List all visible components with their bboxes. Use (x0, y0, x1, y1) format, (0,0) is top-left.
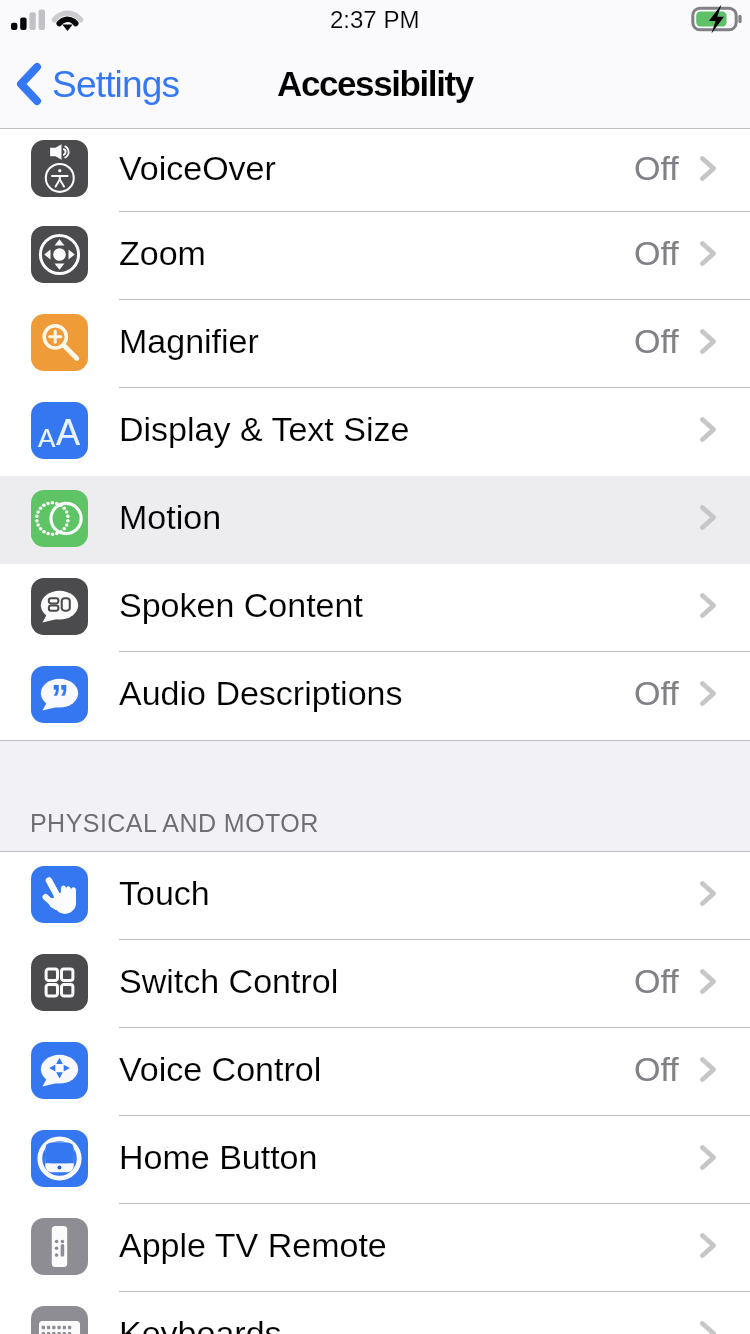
staticText: Off (634, 674, 679, 712)
staticText: Motion (119, 498, 222, 536)
staticText: Off (634, 234, 679, 272)
button[interactable]: A (0, 388, 750, 476)
staticText: Audio Descriptions (119, 674, 403, 712)
staticText: Off (634, 149, 679, 187)
button[interactable]: Spoken Content (0, 564, 750, 652)
staticText: Zoom (119, 234, 206, 272)
staticText: 2:37 PM (330, 6, 420, 33)
staticText: Apple TV Remote (119, 1226, 387, 1264)
staticText: Spoken Content (119, 586, 363, 624)
staticText: PHYSICAL AND MOTOR (30, 809, 319, 837)
staticText: Settings (52, 64, 180, 105)
button[interactable]: Zoom (0, 212, 750, 300)
staticText: Magnifier (119, 322, 259, 360)
staticText: Accessibility (277, 64, 473, 103)
staticText: A (56, 412, 81, 452)
staticText: Home Button (119, 1138, 318, 1176)
staticText: VoiceOver (119, 149, 276, 187)
staticText: Touch (119, 874, 210, 912)
staticText: Keyboards (119, 1314, 282, 1334)
button[interactable]: ” (0, 652, 750, 740)
button[interactable]: VoiceOver (0, 129, 750, 212)
staticText: Voice Control (119, 1050, 322, 1088)
button[interactable]: Voice Control (0, 1028, 750, 1116)
staticText: ” (51, 678, 69, 718)
button[interactable]: Touch (0, 852, 750, 940)
button[interactable]: Switch Control (0, 940, 750, 1028)
button[interactable]: Keyboards (0, 1292, 750, 1334)
button[interactable]: Home Button (0, 1116, 750, 1204)
button[interactable]: Magnifier (0, 300, 750, 388)
button[interactable]: Apple TV Remote (0, 1204, 750, 1292)
staticText: Off (634, 322, 679, 360)
button[interactable]: Motion (0, 476, 750, 564)
staticText: Display & Text Size (119, 410, 410, 448)
staticText: Off (634, 1050, 679, 1088)
staticText: A (38, 423, 56, 452)
staticText: Switch Control (119, 962, 339, 1000)
button[interactable]: Back to Settings (0, 55, 196, 117)
staticText: Off (634, 962, 679, 1000)
